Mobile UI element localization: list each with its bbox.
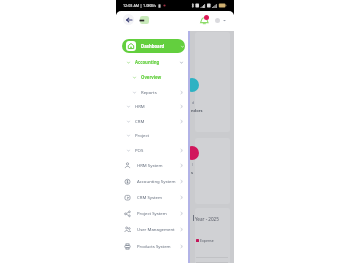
staticText: Expense	[200, 238, 214, 243]
staticText: Project System	[137, 210, 167, 216]
staticText: l	[192, 162, 193, 167]
button[interactable]: CRM System	[116, 190, 188, 204]
button[interactable]: Reports	[116, 85, 188, 99]
button[interactable]: Accounting System	[116, 174, 188, 188]
button[interactable]: Notifications	[200, 14, 209, 24]
staticText: Year - 2025	[195, 216, 219, 222]
staticText: ndors	[191, 108, 203, 113]
staticText: Project	[135, 132, 150, 138]
button[interactable]: Profile menu	[215, 18, 220, 23]
button[interactable]: HRM	[116, 99, 188, 113]
staticText: 12:03 AM | 1.0KB/s	[123, 3, 157, 8]
button[interactable]: Overview	[116, 70, 188, 84]
button[interactable]: Project	[116, 128, 188, 142]
staticText: CRM	[135, 118, 145, 124]
button[interactable]: User Management	[116, 222, 188, 236]
staticText: Accounting System	[137, 178, 176, 184]
staticText: Overview	[141, 74, 162, 80]
staticText: User Management	[137, 226, 175, 232]
staticText: HRM System	[137, 162, 163, 168]
button[interactable]: POS	[116, 143, 188, 157]
button[interactable]: CRM	[116, 114, 188, 128]
button[interactable]: Products System	[116, 239, 188, 253]
button[interactable]: Back	[123, 14, 134, 25]
staticText: Dashboard	[141, 43, 165, 49]
staticText: d	[192, 100, 195, 105]
staticText: HRM	[135, 103, 145, 109]
staticText: Accounting	[135, 59, 160, 65]
staticText: POS	[135, 147, 144, 153]
staticText: s	[191, 170, 194, 175]
button[interactable]: Dashboard	[122, 39, 185, 53]
button[interactable]: HRM System	[116, 158, 188, 172]
button[interactable]: Accounting	[116, 55, 188, 69]
staticText: CRM System	[137, 194, 163, 200]
staticText: Reports	[141, 89, 157, 95]
staticText: Products System	[137, 243, 171, 249]
button[interactable]: Project System	[116, 206, 188, 220]
